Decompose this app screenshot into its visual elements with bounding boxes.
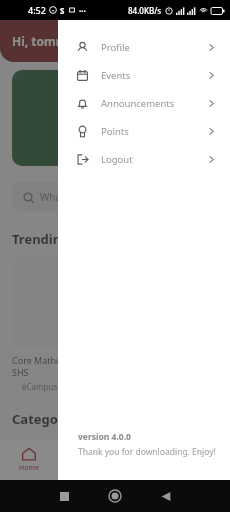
staticText: 84.0KB/s [128,5,162,16]
staticText: Home [19,463,40,473]
button[interactable]: Logout [58,145,230,173]
button[interactable]: Points [58,117,230,145]
staticText: 4:52 [28,4,46,16]
staticText: Thank you for downloading. Enjoy! [78,446,216,458]
staticText: SHS [12,366,29,378]
staticText: Logout [101,153,133,166]
staticText: Hi, tommy [12,33,75,49]
staticText: What do you want to learn [40,190,165,204]
staticText: Events [101,69,131,82]
staticText: Profile [101,41,130,54]
staticText: eCampus Edu [22,381,74,392]
staticText: Core Mathematics [12,354,89,366]
button[interactable]: Back [154,484,178,508]
staticText: Trending [12,230,70,248]
staticText: S [60,5,65,16]
button[interactable]: Announcements [58,89,230,117]
staticText: Points [101,125,129,138]
staticText: ··· [79,5,86,16]
button[interactable]: Recents [52,484,76,508]
staticText: Announcements [101,97,175,110]
staticText: Categories [12,410,82,428]
button[interactable]: Events [58,61,230,89]
staticText: version 4.0.0 [78,431,131,443]
button[interactable]: Home [103,484,127,508]
button[interactable]: Profile [58,33,230,61]
